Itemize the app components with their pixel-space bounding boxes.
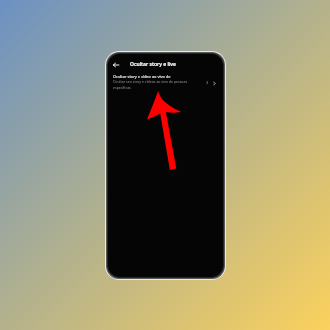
staticText: 3 xyxy=(206,80,209,85)
button[interactable]: Ocultar story e vídeo ao vivo de xyxy=(107,74,223,94)
staticText: Ocultar story e vídeo ao vivo de xyxy=(113,74,171,79)
button[interactable]: Back xyxy=(108,57,222,71)
staticText: Ocultar seu story e vídeos ao vivo de pe… xyxy=(113,79,203,90)
staticText: Ocultar story e live xyxy=(130,61,176,68)
